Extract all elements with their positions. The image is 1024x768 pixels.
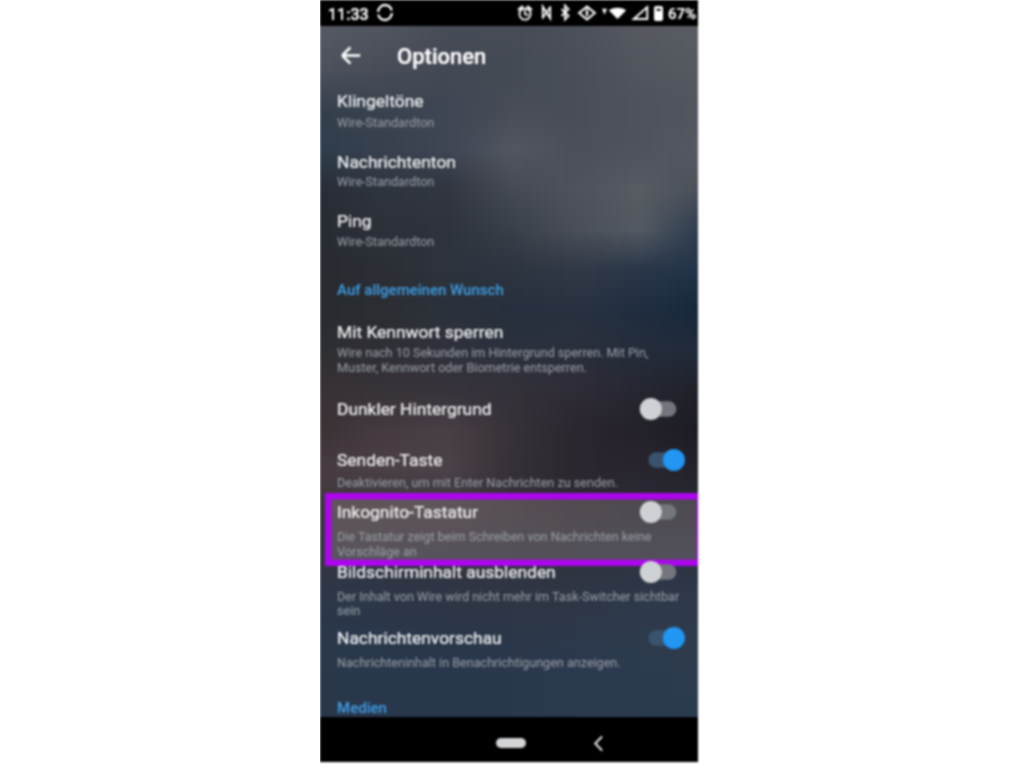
button[interactable]: Ping bbox=[337, 211, 372, 231]
staticText: Ping bbox=[337, 211, 372, 231]
staticText: Auf allgemeinen Wunsch bbox=[337, 281, 504, 299]
staticText: Klingeltöne bbox=[337, 91, 424, 111]
button[interactable]: Inkognito-Tastatur bbox=[337, 502, 479, 522]
staticText: Mit Kennwort sperren bbox=[337, 322, 504, 342]
staticText: 11:33 bbox=[328, 5, 369, 24]
staticText: Der Inhalt von Wire wird nicht mehr im T… bbox=[337, 589, 680, 604]
staticText: Wire-Standardton bbox=[337, 115, 435, 130]
staticText: Die Tastatur zeigt beim Schreiben von Na… bbox=[337, 529, 652, 544]
button[interactable]: Zurück bbox=[332, 46, 368, 82]
button[interactable]: Aus bbox=[630, 556, 692, 588]
button[interactable]: Klingeltöne bbox=[337, 91, 424, 111]
button[interactable]: Nachrichtenvorschau bbox=[337, 628, 502, 648]
staticText: Wire-Standardton bbox=[337, 174, 435, 189]
staticText: Nachrichteninhalt in Benachrichtigungen … bbox=[337, 655, 621, 670]
staticText: Nachrichtenvorschau bbox=[337, 628, 502, 648]
staticText: Medien bbox=[337, 699, 387, 717]
button[interactable]: Auf allgemeinen Wunsch bbox=[337, 281, 504, 299]
button[interactable]: Nachrichtenton bbox=[337, 152, 456, 172]
button[interactable]: Startbildschirm bbox=[496, 738, 526, 748]
button[interactable]: An bbox=[630, 622, 692, 654]
staticText: Vorschläge an bbox=[337, 544, 417, 559]
button[interactable]: Zurück bbox=[580, 725, 616, 761]
button[interactable]: Medien bbox=[337, 699, 387, 717]
staticText: Wire nach 10 Sekunden im Hintergrund spe… bbox=[337, 345, 649, 360]
staticText: Dunkler Hintergrund bbox=[337, 399, 492, 419]
staticText: Wire-Standardton bbox=[337, 234, 435, 249]
button[interactable]: Aus bbox=[630, 393, 692, 425]
staticText: Optionen bbox=[397, 44, 487, 70]
button[interactable]: An bbox=[630, 444, 692, 476]
staticText: sein bbox=[337, 603, 361, 618]
staticText: 67% bbox=[668, 5, 697, 23]
button[interactable]: Mit Kennwort sperren bbox=[337, 322, 504, 342]
staticText: Deaktivieren, um mit Enter Nachrichten z… bbox=[337, 475, 618, 490]
staticText: Bildschirminhalt ausblenden bbox=[337, 562, 556, 582]
button[interactable]: Optionen bbox=[397, 44, 487, 70]
button[interactable]: Dunkler Hintergrund bbox=[337, 399, 492, 419]
staticText: Nachrichtenton bbox=[337, 152, 456, 172]
staticText: Inkognito-Tastatur bbox=[337, 502, 479, 522]
staticText: Muster, Kennwort oder Biometrie entsperr… bbox=[337, 360, 587, 375]
button[interactable]: Senden-Taste bbox=[337, 450, 443, 470]
button[interactable]: Bildschirminhalt ausblenden bbox=[337, 562, 556, 582]
button[interactable]: Aus bbox=[630, 496, 692, 528]
staticText: Senden-Taste bbox=[337, 450, 443, 470]
